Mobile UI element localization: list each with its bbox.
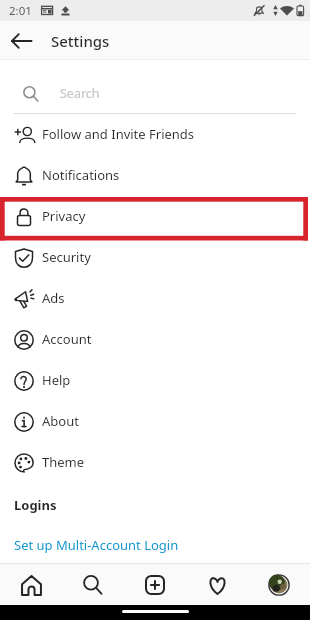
button[interactable]: Back <box>0 21 42 60</box>
staticText: Security <box>42 248 91 266</box>
button[interactable]: Search <box>0 60 310 113</box>
button[interactable]: Follow and Invite Friends <box>0 114 310 155</box>
button[interactable]: Notifications <box>0 155 310 196</box>
button[interactable]: Home <box>0 564 62 605</box>
staticText: Follow and Invite Friends <box>42 125 195 143</box>
staticText: Ads <box>42 289 65 307</box>
staticText: About <box>42 412 79 430</box>
button[interactable]: Account <box>0 319 310 360</box>
button[interactable]: Security <box>0 237 310 278</box>
button[interactable]: New post <box>124 564 186 605</box>
staticText: Set up Multi-Account Login <box>14 536 179 554</box>
staticText: Logins <box>14 496 57 514</box>
staticText: 2:01 <box>9 3 32 19</box>
button[interactable]: Activity <box>186 564 248 605</box>
staticText: Privacy <box>42 207 86 225</box>
staticText: Settings <box>51 31 110 51</box>
staticText: Notifications <box>42 166 120 184</box>
staticText: Account <box>42 330 92 348</box>
button[interactable]: Privacy <box>0 196 310 237</box>
button[interactable]: Set up Multi-Account Login <box>0 524 310 563</box>
button[interactable]: About <box>0 401 310 442</box>
button[interactable]: Help <box>0 360 310 401</box>
staticText: Search <box>60 85 100 102</box>
button[interactable]: Profile <box>248 564 310 605</box>
staticText: Theme <box>42 453 85 471</box>
staticText: Help <box>42 371 71 389</box>
button[interactable]: Search <box>62 564 124 605</box>
button[interactable]: Theme <box>0 442 310 483</box>
button[interactable]: Ads <box>0 278 310 319</box>
